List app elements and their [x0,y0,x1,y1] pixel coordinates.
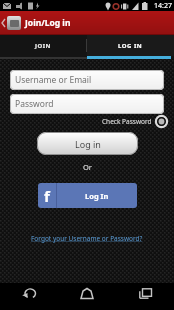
button[interactable] [155,115,168,128]
button[interactable] [58,283,116,303]
staticText: Log In [85,191,109,201]
staticText: f [44,186,50,206]
button[interactable] [0,283,58,303]
staticText: JOIN [35,42,51,50]
button[interactable]: LOG IN [87,35,174,56]
button[interactable] [116,283,174,303]
button[interactable]: Log in [37,132,138,155]
button[interactable]: f [38,183,137,208]
staticText: Or [83,162,92,172]
button[interactable]: Forgot your Username or Password? [31,234,143,243]
staticText: Password [15,98,54,110]
button[interactable]: Password [10,94,164,114]
staticText: Check Password [102,117,152,126]
button[interactable]: Join/Log in [1,11,174,35]
staticText: Join/Log in [25,17,71,29]
button[interactable]: Username or Email [10,70,164,90]
staticText: Username or Email [15,74,92,86]
staticText: Log in [75,138,101,150]
staticText: LOG IN [118,42,143,50]
button[interactable]: JOIN [0,35,86,56]
staticText: 14:27 [154,1,172,11]
